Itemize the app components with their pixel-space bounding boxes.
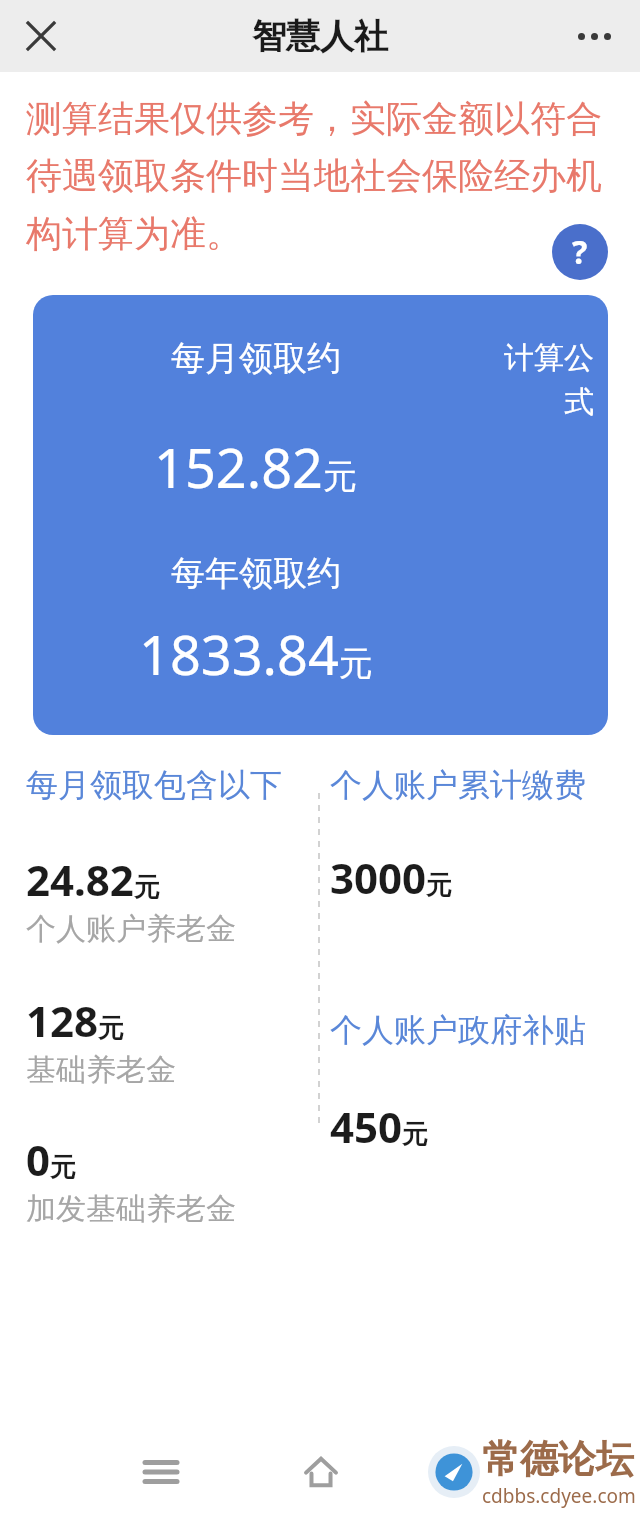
- staticText: 24.82元: [26, 851, 160, 908]
- button[interactable]: Close: [14, 9, 68, 63]
- button[interactable]: Help: [552, 224, 608, 280]
- button[interactable]: Menu: [128, 1439, 194, 1505]
- staticText: 3000元: [330, 849, 453, 906]
- staticText: 加发基础养老金: [26, 1190, 236, 1228]
- staticText: 个人账户养老金: [26, 910, 236, 948]
- staticText: 0元: [26, 1131, 77, 1188]
- staticText: 每年领取约: [171, 552, 341, 595]
- staticText: 常德论坛: [482, 1435, 634, 1483]
- button[interactable]: More options: [566, 8, 622, 64]
- staticText: 智慧人社: [252, 15, 388, 58]
- staticText: 计算公式: [478, 339, 594, 421]
- staticText: 1833.84元: [139, 617, 373, 691]
- staticText: ?: [572, 230, 588, 274]
- staticText: 个人账户政府补贴: [330, 1010, 586, 1050]
- staticText: cdbbs.cdyee.com: [482, 1483, 636, 1509]
- staticText: 个人账户累计缴费: [330, 765, 586, 805]
- staticText: 152.82元: [154, 430, 357, 504]
- button[interactable]: 计算公式: [33, 295, 608, 735]
- staticText: 基础养老金: [26, 1051, 176, 1089]
- staticText: 450元: [330, 1098, 429, 1155]
- staticText: 128元: [26, 992, 125, 1049]
- staticText: 测算结果仅供参考，实际金额以符合待遇领取条件时当地社会保险经办机构计算为准。: [26, 96, 608, 257]
- staticText: 每月领取约: [171, 337, 341, 380]
- button[interactable]: Home: [288, 1439, 354, 1505]
- staticText: 每月领取包含以下: [26, 765, 282, 805]
